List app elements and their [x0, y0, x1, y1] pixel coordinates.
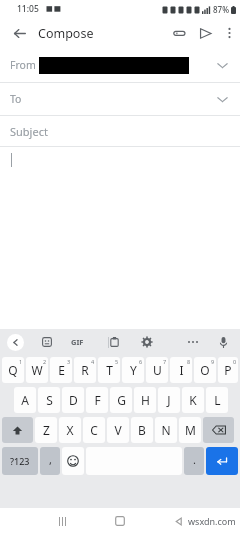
staticText: J — [167, 392, 171, 408]
staticText: 0 — [233, 358, 237, 365]
button[interactable]: P — [218, 357, 238, 383]
button[interactable]: Enter — [206, 447, 238, 475]
staticText: D — [69, 392, 78, 408]
button[interactable]: Y — [122, 357, 144, 383]
button[interactable]: Home — [109, 510, 131, 532]
button[interactable]: Expand from — [212, 55, 232, 75]
button[interactable] — [0, 147, 240, 173]
button[interactable]: S — [38, 387, 60, 413]
staticText: U — [153, 362, 162, 378]
button[interactable]: Stickers — [38, 333, 56, 351]
staticText: C — [90, 422, 98, 438]
button[interactable]: Backspace — [203, 417, 234, 443]
button[interactable]: ?123 — [2, 447, 38, 475]
staticText: From — [10, 58, 36, 72]
button[interactable]: Clipboard — [105, 333, 123, 351]
staticText: 5 — [115, 358, 119, 365]
staticText: 87% — [213, 4, 229, 15]
button[interactable]: H — [134, 387, 156, 413]
button[interactable]: Keyboard settings — [138, 333, 156, 351]
staticText: N — [161, 422, 171, 438]
staticText: 6 — [139, 358, 143, 365]
button[interactable]: Subject — [0, 116, 240, 146]
button[interactable]: D — [62, 387, 84, 413]
button[interactable]: Attach file — [166, 20, 192, 46]
staticText: Q — [8, 362, 18, 378]
button[interactable]: G — [110, 387, 132, 413]
button[interactable]: Send — [192, 20, 218, 46]
button[interactable]: T — [98, 357, 120, 383]
staticText: 11:05 — [17, 3, 39, 15]
button[interactable]: Q — [2, 357, 24, 383]
staticText: S — [46, 392, 53, 408]
staticText: R — [81, 362, 89, 378]
button[interactable]: More keyboard options — [184, 333, 202, 351]
button[interactable]: GIF — [71, 337, 84, 347]
button[interactable]: K — [182, 387, 204, 413]
staticText: F — [94, 392, 101, 408]
button[interactable]: Z — [35, 417, 57, 443]
button[interactable]: M — [179, 417, 201, 443]
staticText: , — [49, 452, 52, 467]
staticText: Subject — [10, 124, 48, 139]
staticText: B — [138, 422, 146, 438]
staticText: A — [21, 392, 29, 408]
button[interactable]: Emoji — [62, 447, 84, 475]
staticText: O — [200, 362, 210, 378]
staticText: . — [193, 452, 196, 467]
button[interactable]: A — [14, 387, 36, 413]
staticText: Y — [130, 362, 137, 378]
button[interactable]: W — [26, 357, 48, 383]
staticText: E — [58, 362, 65, 378]
staticText: wsxdn.com — [188, 515, 236, 527]
button[interactable]: E — [50, 357, 72, 383]
button[interactable]: Expand recipients — [212, 89, 232, 109]
button[interactable]: More options — [218, 22, 240, 44]
button[interactable]: V — [107, 417, 129, 443]
button[interactable]: O — [194, 357, 216, 383]
staticText: Compose — [38, 25, 94, 42]
button[interactable]: J — [158, 387, 180, 413]
staticText: M — [185, 422, 196, 438]
button[interactable]: Recent apps — [51, 510, 73, 532]
staticText: K — [189, 392, 197, 408]
button[interactable]: B — [131, 417, 153, 443]
staticText: Z — [43, 422, 50, 438]
staticText: T — [106, 362, 113, 378]
button[interactable]: U — [146, 357, 168, 383]
staticText: V — [114, 422, 122, 438]
staticText: L — [214, 392, 221, 408]
staticText: 4 — [91, 358, 95, 365]
staticText: X — [66, 422, 74, 438]
staticText: ?123 — [10, 455, 30, 467]
staticText: G — [117, 392, 126, 408]
button[interactable]: Back — [167, 510, 189, 532]
button[interactable]: Back — [8, 22, 30, 44]
staticText: 2 — [43, 358, 47, 365]
button[interactable]: Shift — [2, 417, 33, 443]
button[interactable]: R — [74, 357, 96, 383]
button[interactable]: . — [184, 447, 204, 475]
button[interactable]: , — [40, 447, 60, 475]
staticText: 3 — [67, 358, 71, 365]
staticText: 9 — [211, 358, 215, 365]
staticText: 1 — [19, 358, 23, 365]
button[interactable]: N — [155, 417, 177, 443]
button[interactable]: I — [170, 357, 192, 383]
staticText: H — [141, 392, 150, 408]
staticText: I — [179, 362, 184, 378]
button[interactable]: L — [206, 387, 228, 413]
button[interactable]: Close toolbar — [7, 334, 24, 351]
staticText: To — [10, 92, 22, 106]
button[interactable]: Voice input — [214, 333, 232, 351]
button[interactable]: X — [59, 417, 81, 443]
staticText: W — [31, 362, 43, 378]
staticText: 7 — [163, 358, 167, 365]
staticText: P — [224, 362, 232, 378]
button[interactable]: F — [86, 387, 108, 413]
staticText: 8 — [187, 358, 191, 365]
button[interactable]: C — [83, 417, 105, 443]
